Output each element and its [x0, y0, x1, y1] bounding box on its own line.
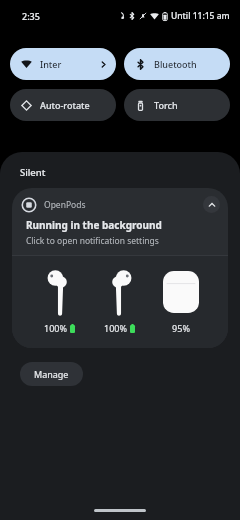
staticText: Running in the background [26, 218, 162, 232]
staticText: Manage [34, 368, 69, 380]
staticText: 100% [104, 322, 127, 334]
button[interactable]: Manage [20, 362, 83, 386]
staticText: 95% [172, 322, 190, 334]
button[interactable]: OpenPods [12, 188, 228, 348]
staticText: 2:35 [22, 10, 40, 22]
staticText: Until 11:15 am [171, 10, 230, 22]
staticText: Silent [20, 166, 46, 179]
staticText: Bluetooth [154, 58, 197, 70]
button[interactable]: Auto-rotate [10, 89, 116, 121]
button[interactable]: Internet [10, 48, 116, 80]
button[interactable]: Collapse notification [203, 196, 220, 213]
staticText: Torch [154, 99, 178, 111]
staticText: OpenPods [44, 199, 203, 211]
button[interactable]: Bluetooth [124, 48, 230, 80]
staticText: Internet [40, 58, 66, 70]
staticText: Click to open notification settings [26, 235, 159, 247]
staticText: 100% [44, 322, 67, 334]
button[interactable]: Torch [124, 89, 230, 121]
staticText: Auto-rotate [40, 99, 90, 111]
